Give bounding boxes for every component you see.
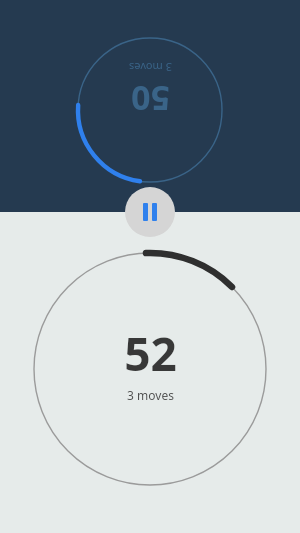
staticText: 52 [124,322,177,385]
button[interactable]: 52 [0,212,300,533]
staticText: 3 moves [129,60,172,75]
button[interactable]: 50 [0,0,300,212]
staticText: 3 moves [127,387,174,403]
staticText: 50 [131,76,170,122]
button[interactable]: Pause [125,187,175,237]
